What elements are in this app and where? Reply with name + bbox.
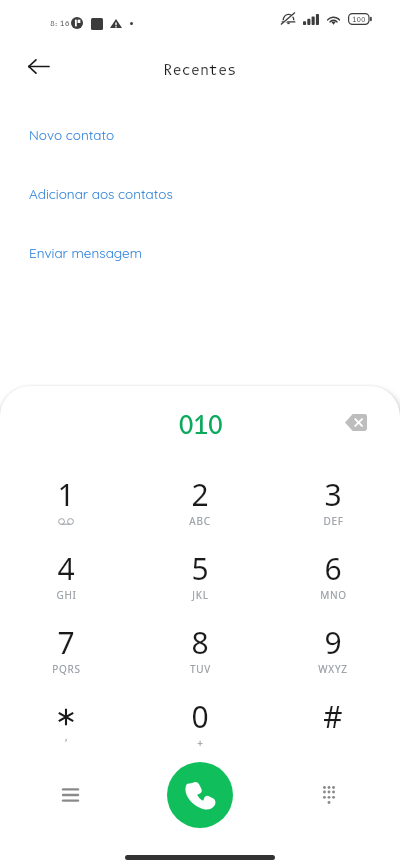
button[interactable]: 6: [290, 548, 376, 616]
button[interactable]: Hide dialpad: [307, 773, 351, 817]
staticText: 1: [57, 474, 75, 515]
staticText: 8: [191, 622, 209, 663]
staticText: GHI: [56, 588, 77, 602]
staticText: Novo contato: [29, 126, 115, 143]
button[interactable]: 1: [23, 474, 109, 542]
staticText: ’: [65, 736, 68, 750]
staticText: +: [197, 736, 204, 750]
button[interactable]: Enviar mensagem: [0, 231, 400, 273]
button[interactable]: Adicionar aos contatos: [0, 172, 400, 214]
button[interactable]: 0: [157, 696, 243, 764]
staticText: ABC: [189, 514, 211, 528]
staticText: TUV: [190, 662, 211, 676]
staticText: 010: [0, 410, 400, 440]
staticText: MNO: [320, 588, 347, 602]
staticText: Adicionar aos contatos: [29, 185, 173, 202]
staticText: Enviar mensagem: [29, 244, 142, 261]
staticText: 3: [324, 474, 342, 515]
button[interactable]: 4: [23, 548, 109, 616]
button[interactable]: Novo contato: [0, 113, 400, 155]
staticText: 100: [352, 15, 366, 24]
button[interactable]: Call: [167, 762, 233, 828]
staticText: PQRS: [52, 662, 81, 676]
button[interactable]: 3: [290, 474, 376, 542]
button[interactable]: 8: [157, 622, 243, 690]
staticText: 8:16: [50, 19, 70, 28]
staticText: 4: [57, 548, 75, 589]
button[interactable]: Backspace: [335, 401, 377, 443]
staticText: WXYZ: [318, 662, 348, 676]
button[interactable]: 2: [157, 474, 243, 542]
button[interactable]: Call log options: [48, 773, 92, 817]
button[interactable]: 5: [157, 548, 243, 616]
staticText: 0: [191, 696, 209, 737]
staticText: 9: [324, 622, 342, 663]
staticText: #: [323, 696, 343, 737]
staticText: 2: [191, 474, 209, 515]
button[interactable]: #: [290, 696, 376, 764]
staticText: Recentes: [0, 61, 400, 78]
staticText: 5: [191, 548, 209, 589]
staticText: 6: [324, 548, 342, 589]
staticText: JKL: [192, 588, 209, 602]
button[interactable]: 7: [23, 622, 109, 690]
button[interactable]: 9: [290, 622, 376, 690]
staticText: DEF: [323, 514, 344, 528]
button[interactable]: ’: [23, 696, 109, 764]
staticText: 7: [57, 622, 75, 663]
button[interactable]: Back: [15, 43, 62, 90]
